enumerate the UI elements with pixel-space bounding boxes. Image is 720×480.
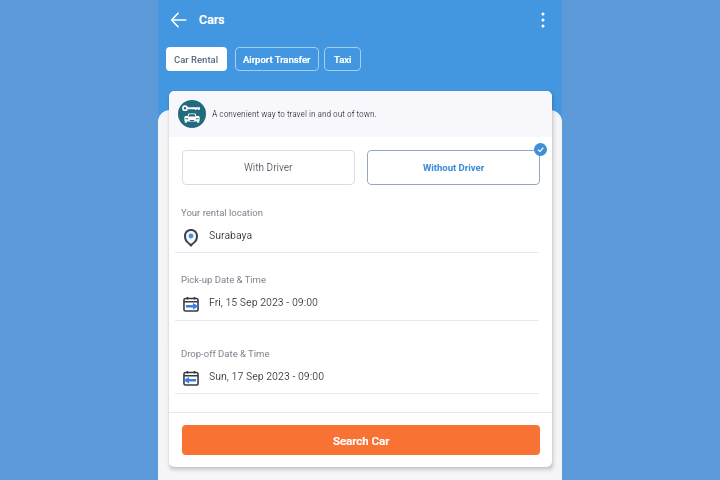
button[interactable]: Back xyxy=(165,6,193,34)
staticText: With Driver xyxy=(244,162,293,174)
staticText: Your rental location xyxy=(181,207,263,218)
staticText: Pick-up Date & Time xyxy=(181,274,266,285)
staticText: Drop-off Date & Time xyxy=(181,348,270,359)
staticText: Without Driver xyxy=(423,162,485,173)
staticText: Fri, 15 Sep 2023 - 09:00 xyxy=(209,296,319,308)
staticText: Search Car xyxy=(333,434,390,447)
staticText: Car Rental xyxy=(174,54,219,65)
staticText: Airport Transfer xyxy=(243,54,311,65)
button[interactable]: Without Driver xyxy=(367,150,540,185)
staticText: A convenient way to travel in and out of… xyxy=(212,109,377,119)
button[interactable]: With Driver xyxy=(182,150,355,185)
button[interactable]: Airport Transfer xyxy=(235,47,319,71)
button[interactable]: Search Car xyxy=(182,425,540,455)
staticText: Surabaya xyxy=(209,229,253,241)
button[interactable]: More options xyxy=(531,8,555,32)
staticText: Cars xyxy=(199,12,225,27)
staticText: Taxi xyxy=(334,54,352,65)
button[interactable]: Car Rental xyxy=(166,47,227,71)
staticText: Sun, 17 Sep 2023 - 09:00 xyxy=(209,370,325,382)
button[interactable]: Taxi xyxy=(324,47,361,71)
